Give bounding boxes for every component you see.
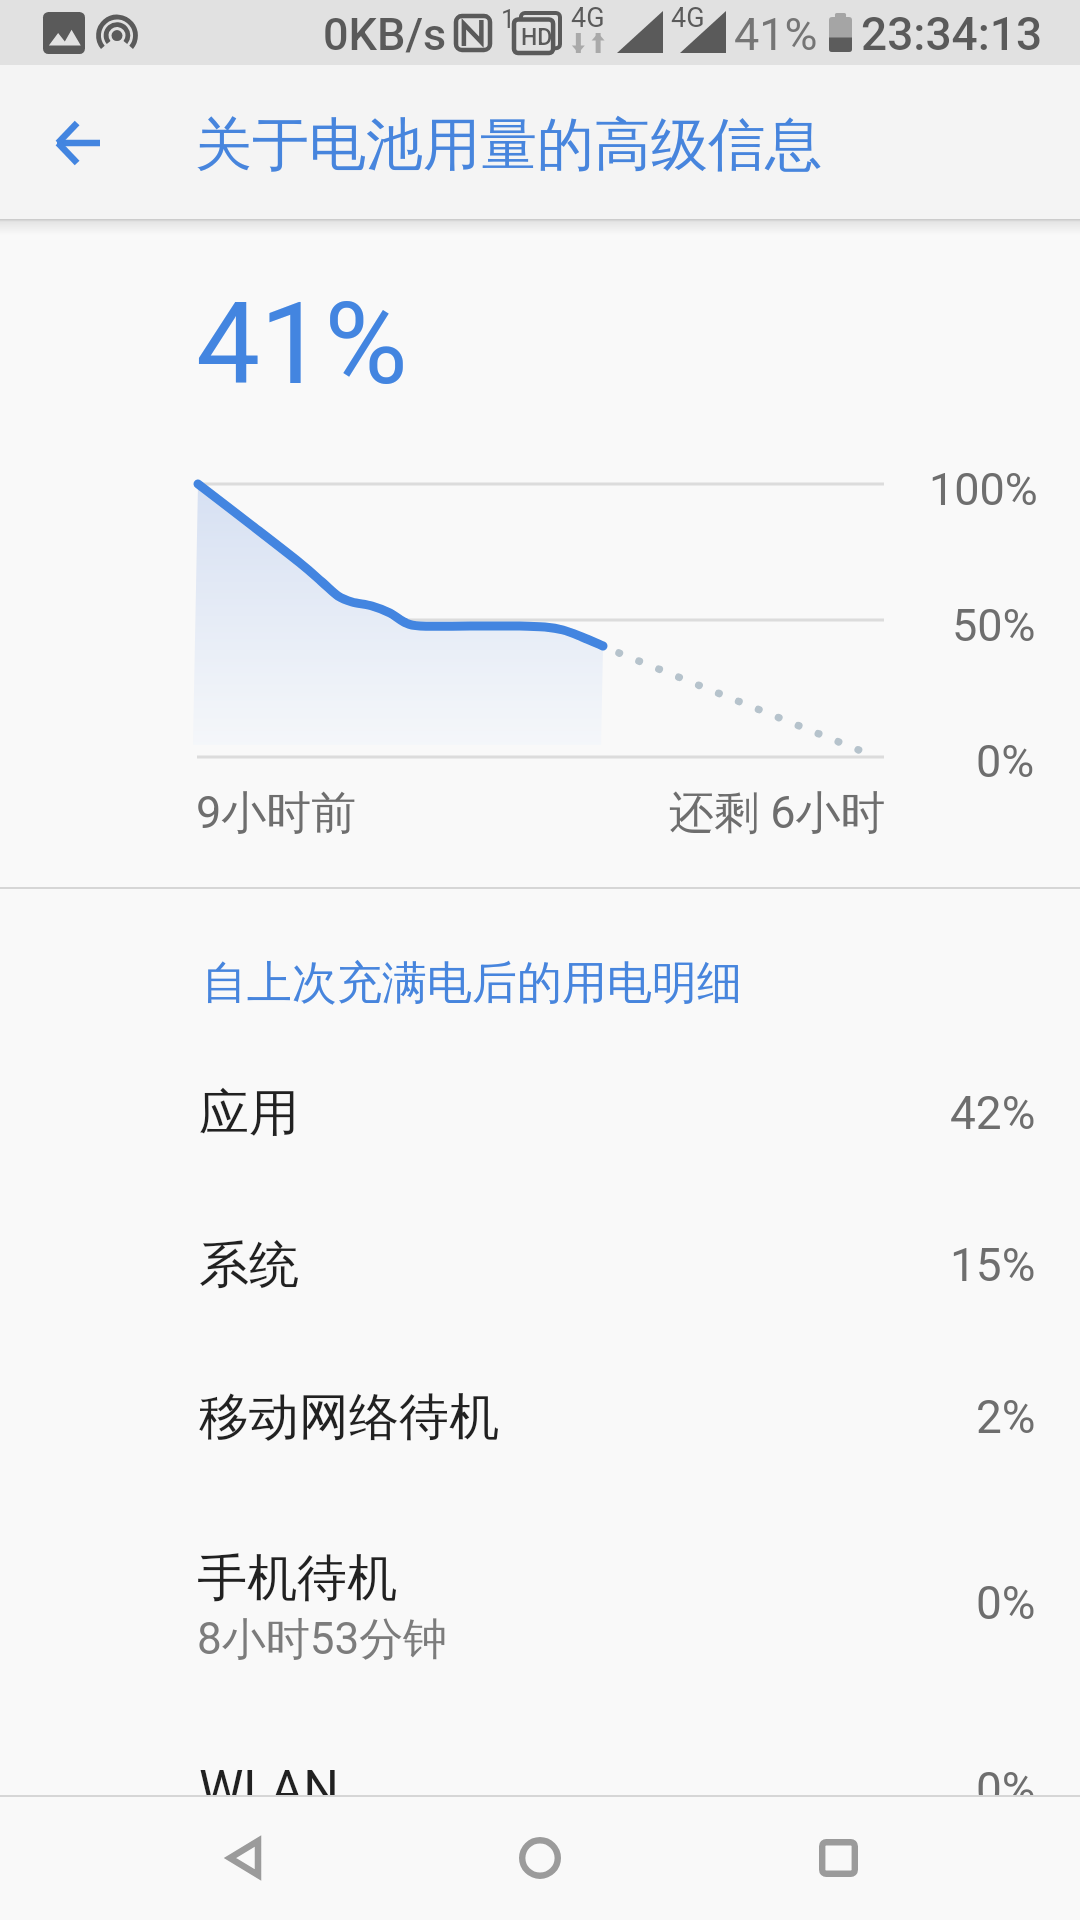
staticText: 0%	[976, 735, 1035, 788]
staticText: 关于电池用量的高级信息	[195, 109, 822, 181]
staticText: 0%	[976, 1762, 1036, 1816]
staticText: 4G	[571, 2, 605, 34]
staticText: 42%	[950, 1086, 1036, 1140]
staticText: 0KB/s	[323, 8, 447, 61]
staticText: WLAN	[199, 1760, 340, 1819]
staticText: 手机待机	[197, 1547, 397, 1610]
staticText: 1	[501, 5, 516, 34]
button[interactable]: 应用	[0, 1037, 1080, 1189]
staticText: 9小时前	[196, 785, 357, 842]
button[interactable]: WLAN	[0, 1713, 1080, 1865]
button[interactable]: 手机待机	[0, 1493, 1080, 1713]
staticText: 2%	[976, 1390, 1036, 1444]
staticText: 应用	[199, 1082, 299, 1145]
staticText: 41%	[734, 8, 818, 61]
button[interactable]: 系统	[0, 1189, 1080, 1341]
button[interactable]: 主屏幕	[478, 1795, 602, 1920]
staticText: 8小时53分钟	[197, 1612, 448, 1667]
staticText: 4G	[671, 2, 705, 34]
staticText: 23:34:13	[861, 7, 1043, 61]
staticText: HD	[521, 24, 553, 51]
staticText: 100%	[929, 463, 1038, 516]
staticText: 50%	[952, 599, 1036, 652]
staticText: 0%	[976, 1576, 1036, 1630]
button[interactable]: 返回	[182, 1795, 306, 1920]
staticText: 41%	[196, 277, 408, 411]
staticText: 还剩 6小时	[669, 785, 886, 842]
button[interactable]: 返回	[16, 65, 140, 219]
button[interactable]: 最近任务	[776, 1795, 900, 1920]
staticText: 自上次充满电后的用电明细	[202, 955, 742, 1012]
staticText: 移动网络待机	[199, 1386, 499, 1449]
button[interactable]: 移动网络待机	[0, 1341, 1080, 1493]
staticText: 系统	[199, 1234, 299, 1297]
button[interactable]: 自上次充满电后的用电明细	[0, 889, 1080, 1037]
staticText: 15%	[950, 1238, 1036, 1292]
